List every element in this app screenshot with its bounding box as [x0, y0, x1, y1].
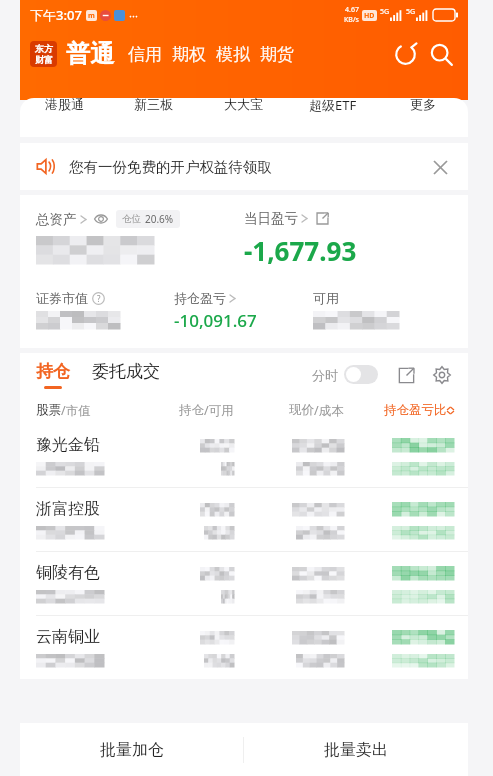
button[interactable]: 大大宝 [198, 96, 288, 120]
button[interactable]: 普通 [66, 39, 114, 69]
staticText: /可用 [204, 402, 234, 419]
staticText: 持仓盈亏比 [384, 402, 447, 418]
staticText: 持仓盈亏 [174, 290, 226, 306]
button[interactable]: Settings [430, 363, 454, 387]
staticText: 5G [406, 7, 416, 17]
button[interactable]: 期货 [255, 44, 299, 65]
staticText: 仓位 [122, 213, 141, 225]
staticText: 超级ETF [309, 96, 357, 114]
staticText: 批量加仓 [100, 740, 164, 760]
staticText: 大大宝 [224, 96, 263, 112]
staticText: ··· [129, 8, 138, 23]
button[interactable]: Search [426, 39, 456, 69]
button[interactable]: 浙富控股 [20, 488, 468, 551]
staticText: /成本 [314, 402, 344, 419]
button[interactable]: 铜陵有色 [20, 552, 468, 615]
button[interactable]: 新三板 [109, 96, 198, 120]
button[interactable]: 当日盈亏 [244, 210, 329, 227]
staticText: 可用 [313, 290, 339, 306]
button[interactable]: 持仓盈亏 [174, 290, 236, 306]
staticText: 您有一份免费的开户权益待领取 [69, 158, 272, 176]
staticText: -1,677.93 [244, 233, 357, 268]
staticText: 云南铜业 [36, 627, 100, 647]
button[interactable]: 云南铜业 [20, 616, 468, 679]
staticText: /市值 [61, 402, 91, 419]
staticText: HD [364, 11, 375, 21]
staticText: 持仓 [179, 402, 204, 418]
staticText: 5G [380, 7, 390, 17]
button[interactable]: 更多 [378, 96, 468, 120]
button[interactable]: 委托成交 [92, 364, 160, 385]
staticText: 浙富控股 [36, 499, 100, 519]
button[interactable]: 超级ETF [288, 96, 378, 120]
staticText: 东方 [35, 43, 53, 54]
staticText: 证券市值 [36, 290, 88, 306]
button[interactable]: 东方 [30, 41, 57, 67]
staticText: 现价 [289, 402, 314, 418]
button[interactable]: 您有一份免费的开户权益待领取 [20, 143, 468, 190]
staticText: 财富 [35, 54, 53, 65]
button[interactable]: Close [428, 155, 452, 179]
staticText: 期权 [172, 44, 206, 65]
button[interactable]: Expand [394, 363, 418, 387]
button[interactable]: 总资产 [36, 210, 180, 228]
staticText: 分时 [312, 367, 338, 383]
staticText: 股票 [36, 402, 61, 418]
button[interactable]: 批量加仓 [20, 723, 243, 776]
staticText: 当日盈亏 [244, 210, 298, 227]
staticText: 持仓 [36, 361, 70, 382]
staticText: 模拟 [216, 44, 250, 65]
button[interactable]: 模拟 [211, 44, 255, 65]
staticText: 更多 [410, 96, 436, 112]
staticText: 新三板 [134, 96, 173, 112]
staticText: 豫光金铅 [36, 435, 100, 455]
staticText: KB/s [344, 15, 359, 25]
staticText: 铜陵有色 [36, 563, 100, 583]
button[interactable]: 豫光金铅 [20, 424, 468, 487]
staticText: 下午3:07 [30, 6, 82, 24]
staticText: 委托成交 [92, 361, 160, 382]
staticText: 信用 [128, 44, 162, 65]
staticText: 20.6% [145, 212, 174, 226]
staticText: ? [97, 293, 101, 304]
button[interactable]: 批量卖出 [244, 723, 468, 776]
button[interactable]: 分时 [312, 365, 378, 384]
staticText: m [88, 11, 95, 21]
button[interactable]: Refresh [390, 39, 420, 69]
staticText: 4.67 [345, 5, 359, 15]
staticText: 期货 [260, 44, 294, 65]
staticText: 港股通 [45, 96, 84, 112]
staticText: 普通 [66, 39, 114, 69]
button[interactable]: 期权 [167, 44, 211, 65]
staticText: 批量卖出 [324, 740, 388, 760]
button[interactable]: 信用 [123, 44, 167, 65]
button[interactable]: 港股通 [20, 96, 109, 120]
staticText: 总资产 [36, 211, 77, 228]
staticText: -10,091.67 [174, 309, 257, 332]
button[interactable]: 持仓 [36, 361, 70, 389]
